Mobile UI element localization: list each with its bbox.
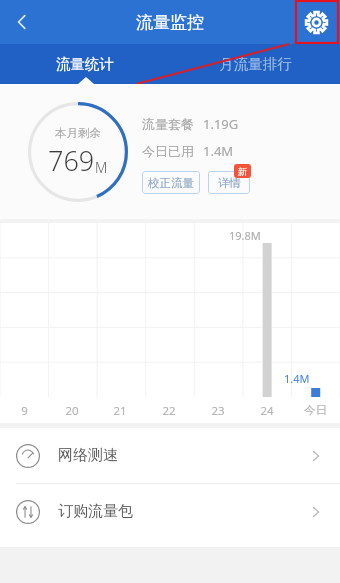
staticText: 本月剩余 — [55, 126, 101, 140]
staticText: 流量监控 — [136, 12, 204, 33]
staticText: 流量套餐 — [142, 116, 194, 132]
staticText: 22 — [162, 403, 176, 419]
button[interactable]: Back — [0, 0, 44, 44]
staticText: 769 — [48, 142, 95, 179]
staticText: 今日 — [304, 403, 327, 417]
staticText: 21 — [113, 403, 127, 419]
staticText: 订购流量包 — [58, 502, 133, 521]
button[interactable]: 订购流量包 — [0, 484, 340, 539]
staticText: 月流量排行 — [219, 55, 292, 73]
staticText: 24 — [260, 403, 274, 419]
staticText: 网络测速 — [58, 446, 118, 465]
button[interactable]: 校正流量 — [142, 171, 200, 194]
staticText: 新 — [238, 166, 247, 177]
button[interactable]: 流量统计 — [0, 44, 170, 84]
staticText: 详情 — [218, 176, 241, 190]
staticText: 今日已用 — [142, 143, 194, 159]
button[interactable]: Settings — [296, 2, 336, 42]
button[interactable]: 详情 — [208, 171, 250, 194]
staticText: 20 — [65, 403, 79, 419]
staticText: 1.4M — [203, 142, 234, 160]
staticText: 1.19G — [203, 115, 239, 133]
staticText: 校正流量 — [148, 176, 194, 190]
staticText: M — [95, 158, 108, 177]
button[interactable]: 月流量排行 — [170, 44, 340, 84]
staticText: 23 — [211, 403, 225, 419]
staticText: 19.8M — [229, 228, 261, 243]
staticText: 流量统计 — [56, 55, 114, 73]
staticText: 9 — [21, 403, 28, 419]
staticText: 1.4M — [284, 371, 310, 386]
button[interactable]: 网络测速 — [0, 428, 340, 483]
